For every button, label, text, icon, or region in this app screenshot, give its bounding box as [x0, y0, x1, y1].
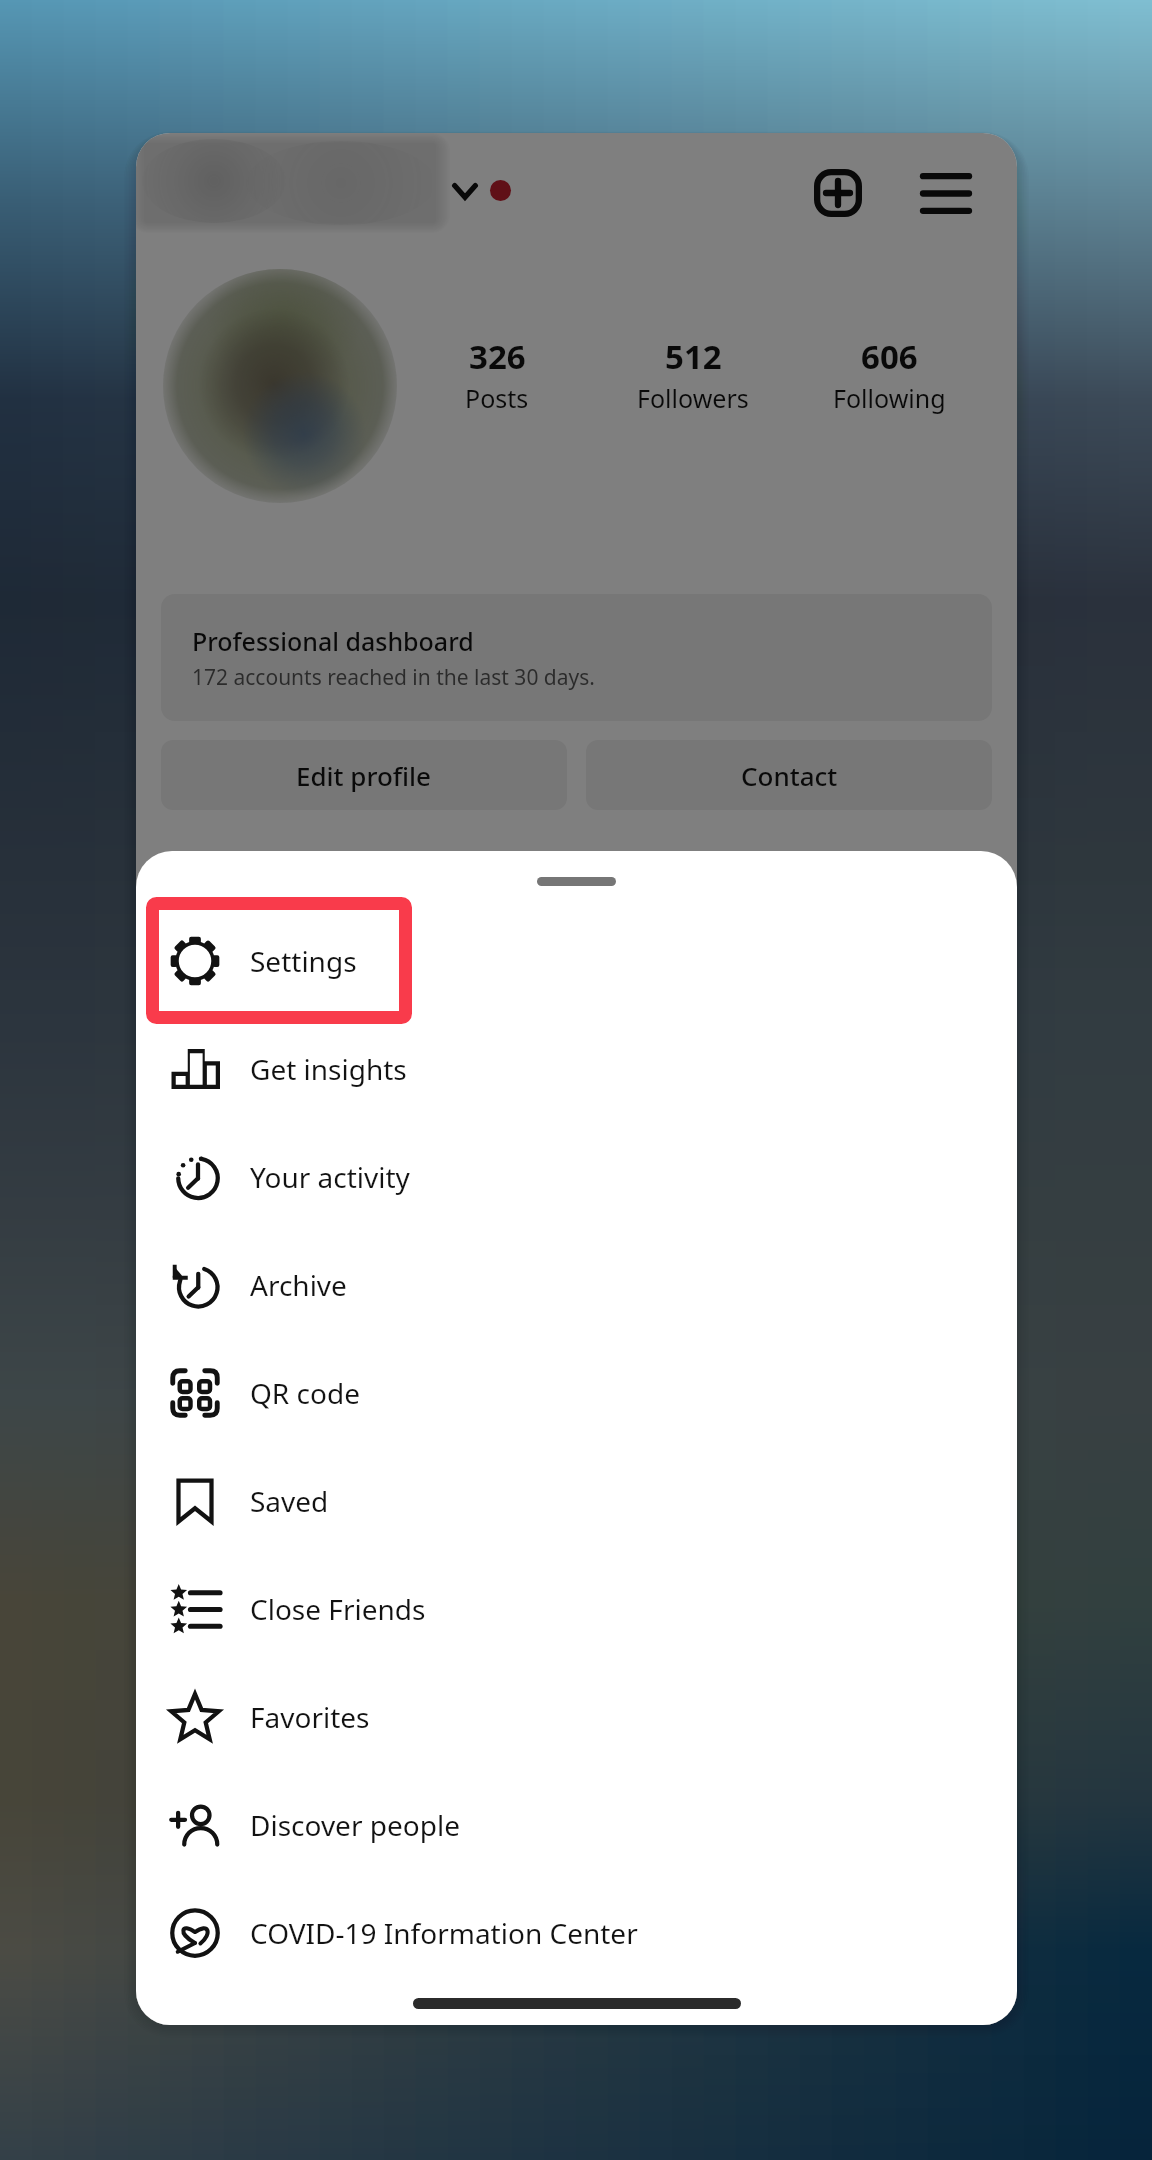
- button[interactable]: Edit profile: [161, 740, 567, 810]
- button[interactable]: 606: [791, 334, 987, 415]
- staticText: 512: [665, 334, 722, 379]
- staticText: Archive: [250, 1266, 347, 1304]
- staticText: 606: [861, 334, 918, 379]
- button[interactable]: Favorites: [136, 1663, 1017, 1771]
- staticText: Contact: [741, 758, 838, 793]
- button[interactable]: Contact: [586, 740, 992, 810]
- staticText: 172 accounts reached in the last 30 days…: [192, 663, 595, 692]
- staticText: Following: [833, 381, 946, 415]
- button[interactable]: 512: [595, 334, 791, 415]
- staticText: Get insights: [250, 1050, 407, 1088]
- button[interactable]: Get insights: [136, 1015, 1017, 1123]
- staticText: Favorites: [250, 1698, 370, 1736]
- staticText: Followers: [637, 381, 749, 415]
- button[interactable]: Professional dashboard: [161, 594, 992, 721]
- button[interactable]: Profile photo: [157, 261, 407, 511]
- button[interactable]: 326: [399, 334, 595, 415]
- staticText: Saved: [250, 1482, 329, 1520]
- button[interactable]: Settings: [136, 907, 1017, 1015]
- staticText: Your activity: [250, 1158, 410, 1196]
- staticText: Discover people: [250, 1806, 460, 1844]
- button[interactable]: Close Friends: [136, 1555, 1017, 1663]
- staticText: Close Friends: [250, 1590, 426, 1628]
- button[interactable]: QR code: [136, 1339, 1017, 1447]
- staticText: 326: [469, 334, 526, 379]
- button[interactable]: Menu: [910, 157, 982, 229]
- staticText: QR code: [250, 1374, 360, 1412]
- button[interactable]: Saved: [136, 1447, 1017, 1555]
- button[interactable]: Archive: [136, 1231, 1017, 1339]
- staticText: Settings: [250, 942, 357, 980]
- button[interactable]: Discover people: [136, 1771, 1017, 1879]
- button[interactable]: COVID-19 Information Center: [136, 1879, 1017, 1987]
- staticText: Professional dashboard: [192, 624, 474, 658]
- staticText: Edit profile: [296, 758, 432, 793]
- staticText: Posts: [465, 381, 529, 415]
- button[interactable]: New post: [802, 157, 874, 229]
- button[interactable]: Your activity: [136, 1123, 1017, 1231]
- staticText: COVID-19 Information Center: [250, 1914, 638, 1952]
